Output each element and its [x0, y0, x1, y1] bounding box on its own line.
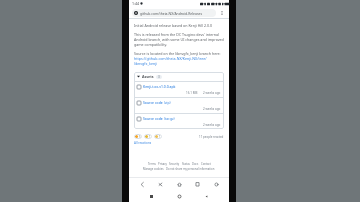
- button[interactable]: Do not share my personal information: [165, 167, 216, 171]
- button[interactable]: Manage cookies: [142, 167, 165, 171]
- button[interactable]: Home: [175, 192, 184, 201]
- staticText: 5: [139, 135, 141, 139]
- button[interactable]: Kenji-t.xx-v1.0.0.apk: [134, 82, 224, 97]
- button[interactable]: Back: [137, 179, 148, 190]
- staticText: 1: [149, 135, 151, 139]
- staticText: (tar.gz): [164, 116, 175, 121]
- button[interactable]: Tabs: [192, 179, 203, 190]
- staticText: This is released from the DC Tsugino dev…: [134, 32, 224, 47]
- button[interactable]: github.com/theia-NX/Android-Releases: [132, 9, 216, 17]
- button[interactable]: Docs: [191, 162, 200, 166]
- staticText: 2 weeks ago: [203, 107, 221, 111]
- staticText: 1: [159, 135, 161, 139]
- button[interactable]: Collapse: [134, 72, 224, 81]
- other: Collapse: [137, 75, 140, 78]
- button[interactable]: 5: [134, 134, 142, 139]
- button[interactable]: Recents: [147, 192, 156, 201]
- staticText: Kenji-t.xx-v1.0.0.apk: [143, 84, 176, 89]
- button[interactable]: All reactions: [134, 141, 152, 145]
- staticText: Source code: [143, 116, 163, 121]
- button[interactable]: Privacy: [157, 162, 168, 166]
- staticText: 3: [158, 75, 160, 79]
- button[interactable]: Home: [174, 179, 185, 190]
- button[interactable]: 1: [154, 134, 162, 139]
- staticText: (zip): [164, 100, 171, 105]
- button[interactable]: Status: [181, 162, 191, 166]
- button[interactable]: 1: [144, 134, 152, 139]
- staticText: Assets: [142, 74, 154, 79]
- button[interactable]: Share: [155, 179, 166, 190]
- button[interactable]: Security: [168, 162, 181, 166]
- button[interactable]: Back: [202, 192, 211, 201]
- staticText: 11 people reacted: [199, 135, 224, 139]
- staticText: Initial Android release based on Kenji H…: [134, 23, 213, 28]
- button[interactable]: More options: [218, 9, 226, 17]
- button[interactable]: https://github.com/theia-NX/Kenji-NX/tre…: [134, 56, 224, 66]
- staticText: Source code: [143, 100, 163, 105]
- button[interactable]: Contact: [200, 162, 212, 166]
- staticText: 1:44: [132, 1, 139, 6]
- staticText: 2 weeks ago: [203, 91, 221, 95]
- button[interactable]: Source code: [134, 98, 224, 113]
- staticText: 2 weeks ago: [203, 123, 221, 127]
- button[interactable]: Terms: [147, 162, 157, 166]
- staticText: Source is located on the libnvgfx_kenji …: [134, 51, 222, 56]
- staticText: 16.1 MB: [186, 91, 198, 95]
- staticText: github.com/theia-NX/Android-Releases: [140, 11, 203, 16]
- button[interactable]: Menu: [211, 179, 222, 190]
- button[interactable]: Source code: [134, 114, 224, 129]
